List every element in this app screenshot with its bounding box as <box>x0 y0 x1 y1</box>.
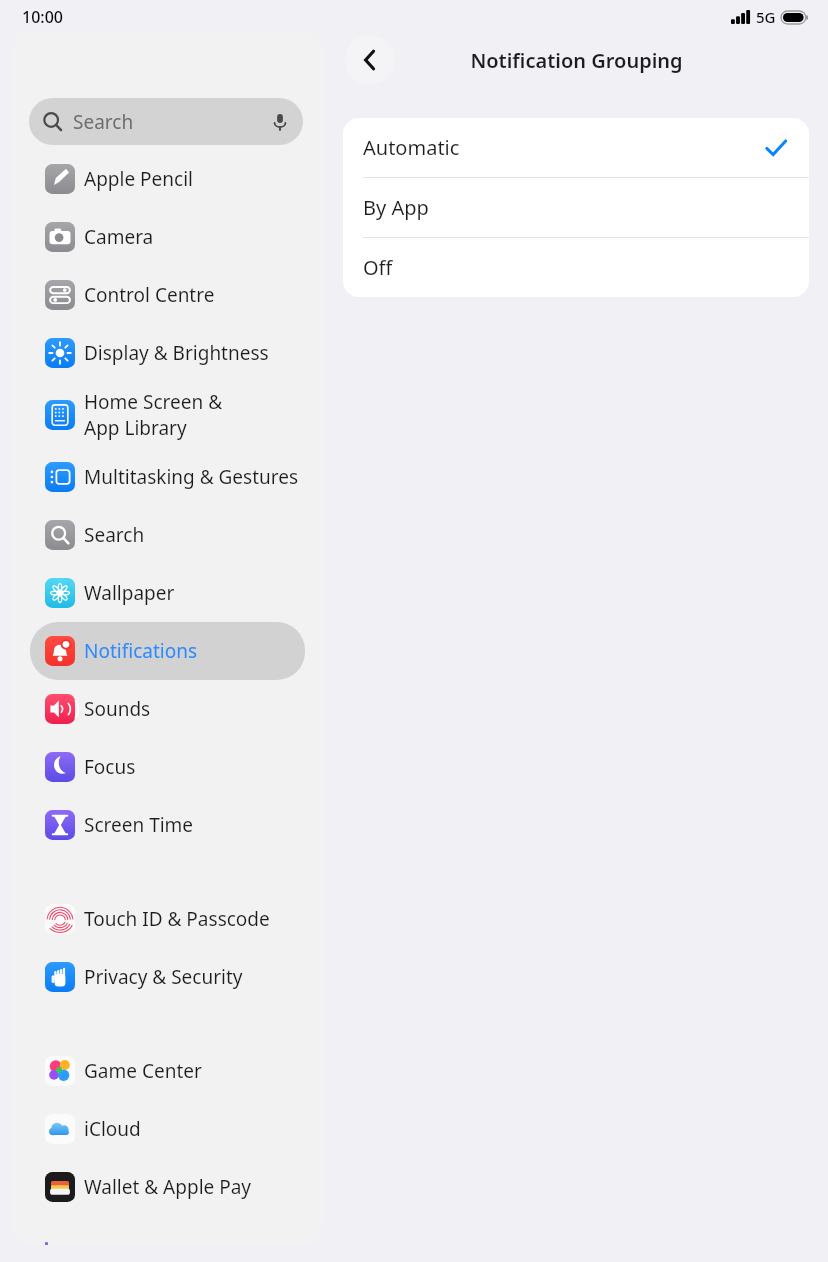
staticText: Search <box>73 109 134 135</box>
staticText: 10:00 <box>22 6 63 28</box>
staticText: Notifications <box>84 638 198 664</box>
button[interactable]: iCloud <box>30 1100 305 1158</box>
staticText: Display & Brightness <box>84 340 269 366</box>
staticText: Screen Time <box>84 812 194 838</box>
staticText: App Library <box>84 415 187 441</box>
staticText: Home Screen & <box>84 389 223 415</box>
staticText: Focus <box>84 754 136 780</box>
staticText: By App <box>363 194 429 221</box>
button[interactable]: Focus <box>30 738 305 796</box>
staticText: Sounds <box>84 696 151 722</box>
button[interactable]: Control Centre <box>30 266 305 324</box>
button[interactable]: Multitasking & Gestures <box>30 448 305 506</box>
button[interactable]: Apps <box>30 1242 305 1245</box>
staticText: Privacy & Security <box>84 964 243 990</box>
button[interactable]: Privacy & Security <box>30 948 305 1006</box>
button[interactable]: Sounds <box>30 680 305 738</box>
staticText: Camera <box>84 224 154 250</box>
staticText: Notification Grouping <box>470 47 683 74</box>
button[interactable]: Touch ID & Passcode <box>30 890 305 948</box>
button[interactable]: Back <box>345 35 395 85</box>
button[interactable]: Search <box>30 506 305 564</box>
button[interactable]: Game Center <box>30 1042 305 1100</box>
staticText: Multitasking & Gestures <box>84 464 299 490</box>
staticText: Apple Pencil <box>84 166 193 192</box>
button[interactable]: Off <box>343 238 809 297</box>
staticText: Search <box>84 522 145 548</box>
staticText: Automatic <box>363 134 460 161</box>
button[interactable]: Wallpaper <box>30 564 305 622</box>
button[interactable]: Display & Brightness <box>30 324 305 382</box>
staticText: Game Center <box>84 1058 202 1084</box>
button[interactable]: Camera <box>30 208 305 266</box>
staticText: Wallpaper <box>84 580 175 606</box>
button[interactable]: Home Screen & <box>30 382 305 448</box>
button[interactable]: Automatic <box>343 118 809 177</box>
staticText: 5G <box>756 7 776 27</box>
staticText: Touch ID & Passcode <box>84 906 270 932</box>
staticText: Off <box>363 254 393 281</box>
button[interactable]: Search <box>29 98 303 145</box>
staticText: Control Centre <box>84 282 215 308</box>
button[interactable]: Wallet & Apple Pay <box>30 1158 305 1216</box>
staticText: iCloud <box>84 1116 141 1142</box>
button[interactable]: Screen Time <box>30 796 305 854</box>
button[interactable]: Notifications <box>30 622 305 680</box>
button[interactable]: Apple Pencil <box>30 150 305 208</box>
button[interactable]: By App <box>343 178 809 237</box>
staticText: Wallet & Apple Pay <box>84 1174 252 1200</box>
